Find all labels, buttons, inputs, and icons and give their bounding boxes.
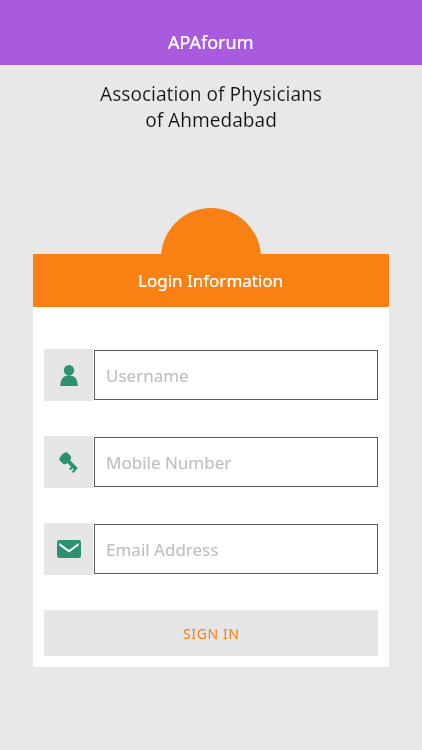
button[interactable]: Username [44,349,378,401]
button[interactable]: SIGN IN [44,610,378,656]
staticText: Username [106,364,189,387]
staticText: APAforum [168,30,254,55]
staticText: Email Address [106,538,219,561]
other: Username [58,364,80,386]
staticText: Association of Physicians of Ahmedabad [100,81,322,132]
staticText: Login Information [138,269,284,292]
other: Password [57,450,81,474]
other: Email [57,540,81,558]
staticText: Mobile Number [106,451,232,474]
button[interactable]: Password [44,436,378,488]
button[interactable]: Email [44,523,378,575]
staticText: SIGN IN [183,624,240,643]
